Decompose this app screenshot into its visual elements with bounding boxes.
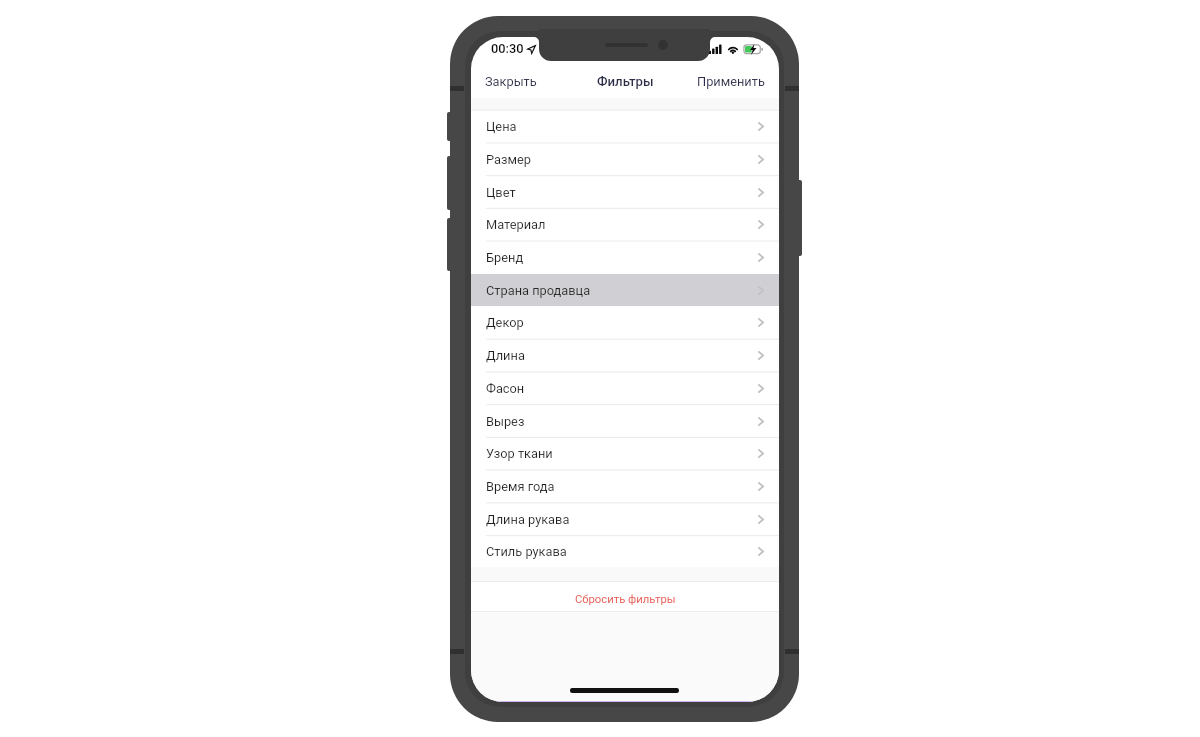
staticText: 00:30 (491, 41, 524, 56)
button[interactable]: Размер (471, 143, 779, 176)
other: Open Страна продавца (758, 286, 764, 295)
button[interactable]: Узор ткани (471, 437, 779, 470)
button[interactable]: Вырез (471, 405, 779, 438)
button[interactable]: Сбросить фильтры (471, 581, 779, 611)
other: Open Декор (758, 318, 764, 327)
staticText: Бренд (486, 250, 524, 265)
staticText: Длина (486, 348, 525, 363)
button[interactable]: Фасон (471, 372, 779, 405)
button[interactable]: Декор (471, 306, 779, 339)
button[interactable]: Длина (471, 339, 779, 372)
staticText: Вырез (486, 414, 525, 429)
staticText: Фасон (486, 381, 525, 396)
staticText: Время года (486, 479, 555, 494)
staticText: Применить (697, 74, 765, 89)
button[interactable]: Материал (471, 208, 779, 241)
other: Open Длина рукава (758, 515, 764, 524)
staticText: Страна продавца (486, 283, 591, 298)
button[interactable]: Время года (471, 470, 779, 503)
staticText: Цвет (486, 185, 516, 200)
button[interactable]: Страна продавца (471, 274, 779, 307)
other: Open Фасон (758, 384, 764, 393)
other: Open Цвет (758, 188, 764, 197)
other: Open Время года (758, 482, 764, 491)
button[interactable]: Стиль рукава (471, 535, 779, 568)
staticText: Длина рукава (486, 512, 570, 527)
button[interactable]: Бренд (471, 241, 779, 274)
staticText: Стиль рукава (486, 544, 567, 559)
other: Open Длина (758, 351, 764, 360)
staticText: Закрыть (485, 74, 537, 89)
staticText: Узор ткани (486, 446, 553, 461)
other: Open Стиль рукава (758, 547, 764, 556)
other: Open Вырез (758, 417, 764, 426)
button[interactable]: Длина рукава (471, 503, 779, 536)
other: Open Узор ткани (758, 449, 764, 458)
button[interactable]: Закрыть (471, 66, 551, 97)
staticText: Цена (486, 119, 517, 134)
staticText: Размер (486, 152, 531, 167)
other: Open Материал (758, 220, 764, 229)
button[interactable]: Применить (683, 66, 779, 97)
other: Open Бренд (758, 253, 764, 262)
staticText: Декор (486, 315, 524, 330)
button[interactable]: Цена (471, 110, 779, 143)
button[interactable]: Цвет (471, 176, 779, 209)
other: Open Цена (758, 122, 764, 131)
staticText: Материал (486, 217, 546, 232)
staticText: Фильтры (597, 74, 654, 89)
staticText: Сбросить фильтры (575, 593, 676, 606)
other: Open Размер (758, 155, 764, 164)
